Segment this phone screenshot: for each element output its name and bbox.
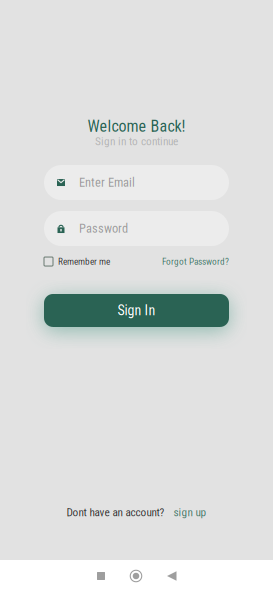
staticText: Dont have an account? [66,506,164,519]
staticText: Remember me [58,256,110,267]
staticText: Welcome Back! [87,117,185,136]
button[interactable]: Back [167,560,273,592]
button[interactable]: Enter Email [44,165,229,200]
button[interactable]: Remember me [44,256,110,267]
button[interactable]: Home [105,560,167,592]
staticText: Sign In [117,302,155,319]
button[interactable]: sign up [164,506,206,519]
button[interactable]: Sign In [44,294,229,327]
button[interactable]: Password [44,211,229,246]
staticText: Forgot Password? [162,256,229,267]
staticText: Enter Email [79,175,135,190]
staticText: Sign in to continue [95,135,178,148]
button[interactable]: Forgot Password? [162,256,229,267]
staticText: Password [79,221,128,236]
staticText: sign up [173,506,206,519]
button[interactable]: Recent apps [0,560,105,592]
